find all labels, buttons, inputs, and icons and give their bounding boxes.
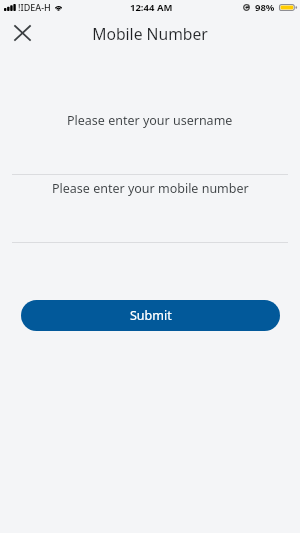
button[interactable]: Close [4, 15, 40, 51]
staticText: 12:44 AM [130, 1, 173, 14]
button[interactable]: Please enter your mobile number [0, 178, 300, 198]
button[interactable]: Please enter your username [0, 110, 300, 130]
staticText: Submit [130, 307, 172, 324]
staticText: Please enter your mobile number [52, 180, 249, 197]
button[interactable]: Submit [21, 300, 280, 331]
staticText: Mobile Number [92, 23, 208, 44]
staticText: !IDEA-H [18, 1, 51, 13]
staticText: Please enter your username [67, 112, 233, 129]
staticText: 98% [255, 1, 275, 14]
